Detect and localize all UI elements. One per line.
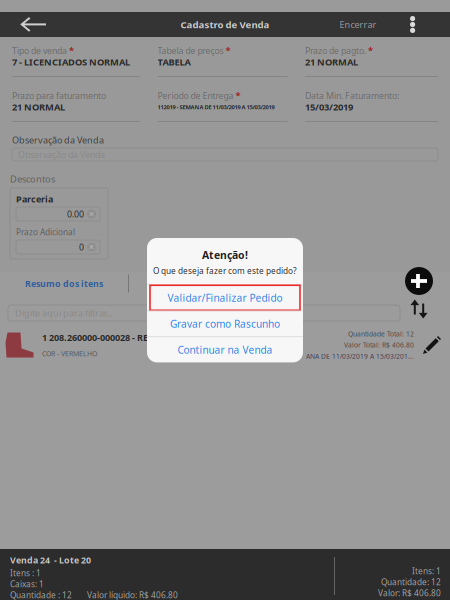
button[interactable]: Validar/Finalizar Pedido xyxy=(147,285,303,310)
button[interactable]: 1 208.260000-000028 - RE xyxy=(0,328,450,362)
staticText: Itens : 1 xyxy=(10,567,41,579)
staticText: * xyxy=(69,44,74,57)
staticText: * xyxy=(368,44,373,57)
staticText: Encerrar xyxy=(339,18,376,31)
staticText: COR - VERMELHO xyxy=(42,349,97,358)
staticText: Quantidade : 12 xyxy=(10,589,72,600)
staticText: ANA DE 11/03/2019 A 15/03/201... xyxy=(306,351,414,361)
staticText: 1 208.260000-000028 - RE xyxy=(42,331,148,344)
staticText: Prazo Adicional xyxy=(16,226,75,238)
staticText: Periodo de Entrega xyxy=(157,89,233,101)
button[interactable]: Adicionar item xyxy=(405,267,433,295)
staticText: 0.00 xyxy=(67,208,84,220)
staticText: Valor líquido: R$ 406.80 xyxy=(87,589,178,600)
staticText: Prazo de pagto. xyxy=(305,44,366,56)
staticText: Itens: 1 xyxy=(412,565,441,577)
staticText: Quantidade Total: 12 xyxy=(348,329,414,338)
staticText: O que deseja fazer com este pedido? xyxy=(153,265,297,276)
button[interactable]: Gravar como Rascunho xyxy=(147,311,303,336)
staticText: Descontos xyxy=(10,173,55,185)
staticText: TABELA xyxy=(157,56,190,68)
button[interactable]: Resumo dos itens xyxy=(0,272,128,295)
staticText: Data Min. Faturamento: xyxy=(305,89,399,101)
staticText: Observação da Venda xyxy=(12,134,104,146)
staticText: 21 NORMAL xyxy=(12,101,65,113)
staticText: 112019 - SEMANA DE 11/03/2019 A 15/03/20… xyxy=(157,103,274,111)
staticText: Prazo para faturamento xyxy=(12,89,106,101)
staticText: Tipo de venda xyxy=(12,44,67,56)
staticText: 0 xyxy=(79,241,84,253)
staticText: Cadastro de Venda xyxy=(180,18,269,31)
staticText: Tabela de preços xyxy=(157,44,223,56)
staticText: 15/03/2019 xyxy=(305,101,353,113)
button[interactable]: Voltar xyxy=(8,12,58,37)
staticText: Continuar na Venda xyxy=(177,343,272,357)
staticText: Parceria xyxy=(16,193,53,205)
staticText: Digite aqui para filtrar... xyxy=(15,307,112,319)
staticText: Atenção! xyxy=(202,248,248,262)
staticText: Caixas: 1 xyxy=(10,578,44,590)
staticText: Validar/Finalizar Pedido xyxy=(167,291,282,305)
staticText: 7 - LICENCIADOS NORMAL xyxy=(12,56,130,68)
staticText: * xyxy=(235,89,240,102)
staticText: Resumo dos itens xyxy=(25,277,103,289)
button[interactable]: Continuar na Venda xyxy=(147,337,303,362)
staticText: Quantidade: 12 xyxy=(381,576,441,588)
button[interactable]: Ordenar itens xyxy=(407,298,431,320)
staticText: Valor Total: R$ 406.80 xyxy=(344,340,414,350)
staticText: Valor: R$ 406.80 xyxy=(378,587,441,599)
staticText: Observação da Venda xyxy=(18,148,105,160)
button[interactable]: Cadastro de Venda xyxy=(165,12,285,37)
button[interactable]: Encerrar xyxy=(329,12,387,37)
staticText: Venda 24 - Lote 20 xyxy=(10,554,91,566)
staticText: * xyxy=(225,44,230,57)
staticText: 21 NORMAL xyxy=(305,56,358,68)
button[interactable]: Mais opções xyxy=(401,12,425,37)
staticText: Gravar como Rascunho xyxy=(170,317,280,331)
